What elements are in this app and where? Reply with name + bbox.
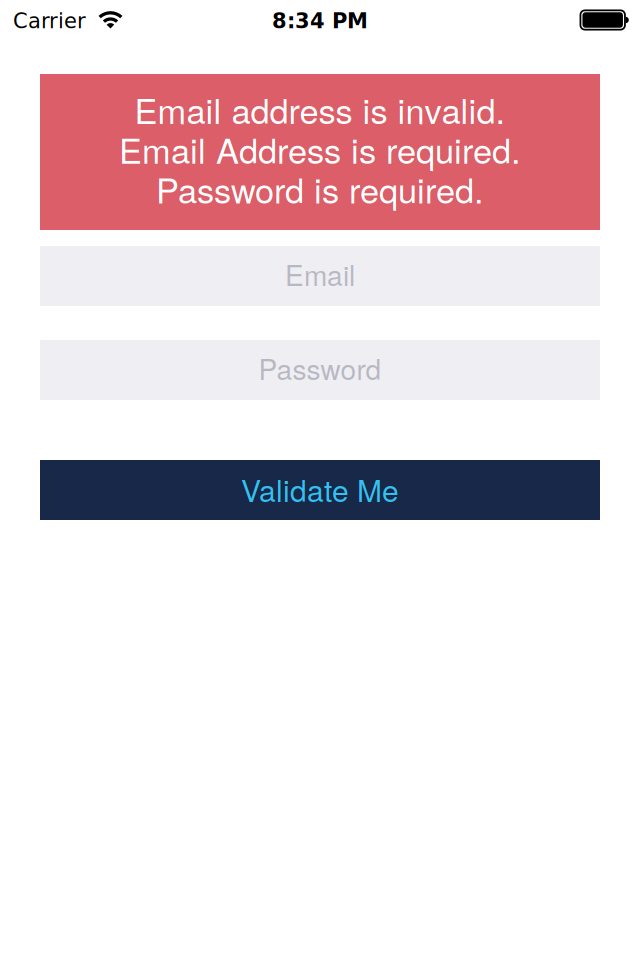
- staticText: Validate Me: [241, 467, 399, 510]
- staticText: Password: [258, 348, 381, 388]
- staticText: Email Address is required.: [119, 124, 521, 174]
- staticText: 8:34 PM: [272, 9, 368, 33]
- staticText: Password is required.: [156, 164, 484, 213]
- button[interactable]: Validate Me: [40, 460, 600, 520]
- staticText: Email: [285, 254, 355, 294]
- staticText: Email address is invalid.: [134, 85, 505, 134]
- staticText: Carrier: [13, 9, 86, 33]
- button[interactable]: Email: [40, 246, 600, 306]
- button[interactable]: Password: [40, 340, 600, 400]
